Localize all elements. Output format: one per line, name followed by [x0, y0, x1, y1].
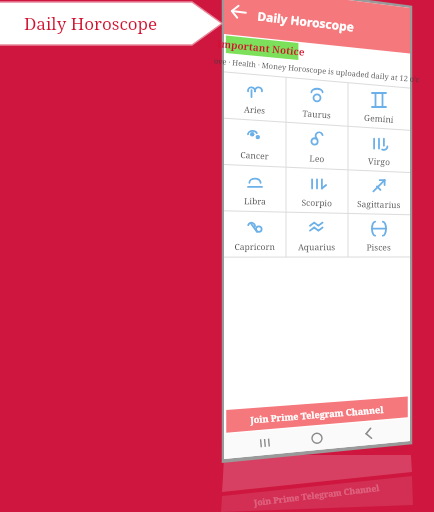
button[interactable]: Daily Horoscope app preview	[0, 0, 434, 512]
